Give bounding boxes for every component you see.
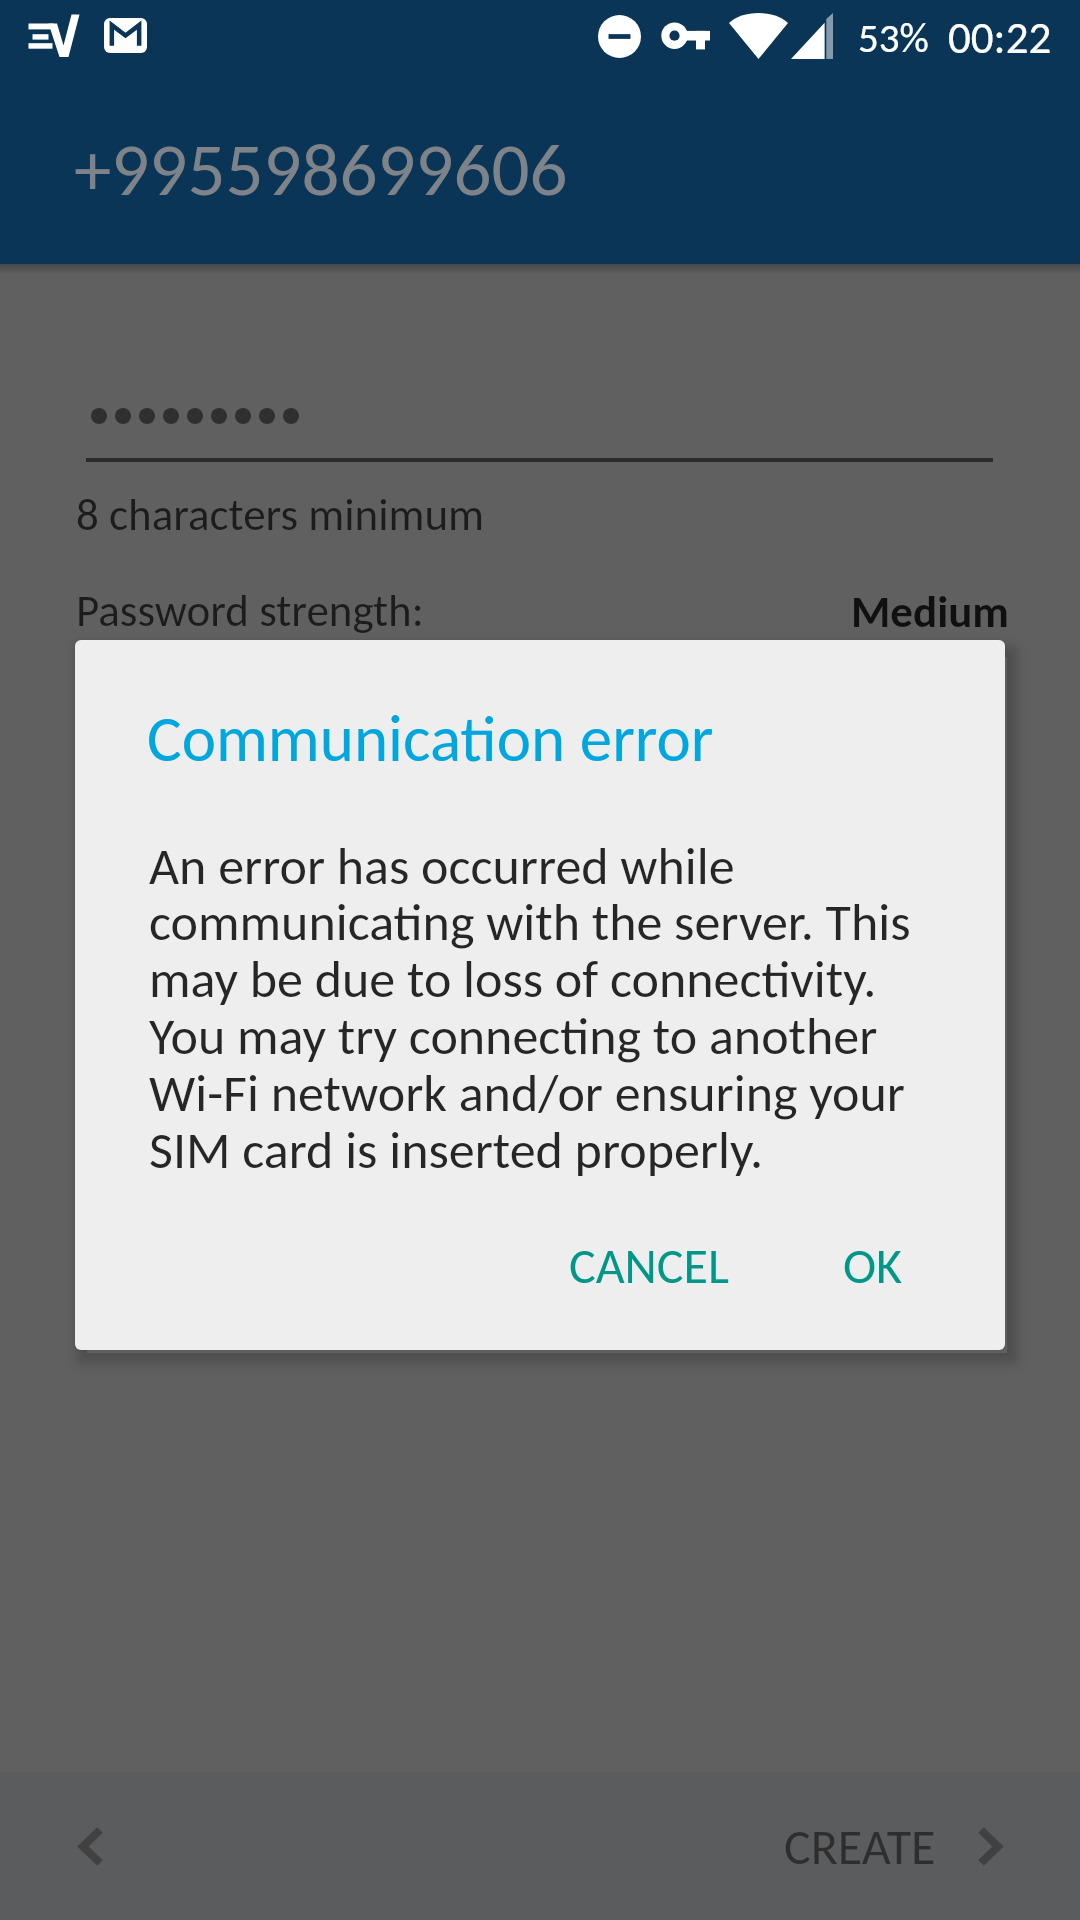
staticText: +995598699606 <box>74 124 568 216</box>
button[interactable]: Password field <box>86 375 993 462</box>
staticText: Medium <box>851 584 1009 639</box>
staticText: 00:22 <box>948 10 1052 65</box>
staticText: OK <box>843 1235 903 1296</box>
staticText: An error has occurred while communicatin… <box>149 834 949 1182</box>
button[interactable]: Back <box>0 1772 178 1920</box>
button[interactable]: OK <box>823 1217 923 1313</box>
button[interactable]: CREATE <box>784 1772 998 1920</box>
staticText: 8 characters minimum <box>76 487 485 542</box>
staticText: Password strength: <box>76 583 424 638</box>
button[interactable]: CANCEL <box>549 1217 749 1313</box>
staticText: CREATE <box>784 1816 936 1877</box>
staticText: 53% <box>858 13 929 63</box>
staticText: Communication error <box>147 699 714 778</box>
staticText: CANCEL <box>569 1235 729 1296</box>
